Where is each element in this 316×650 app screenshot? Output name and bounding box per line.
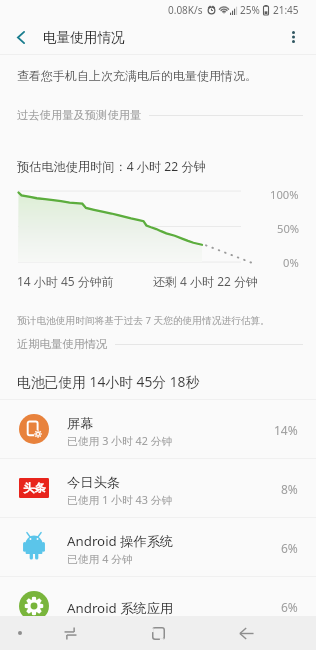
staticText: 6% bbox=[281, 599, 298, 615]
staticText: 0.08K/s bbox=[168, 3, 203, 17]
staticText: 已使用 3 小时 42 分钟 bbox=[67, 433, 173, 448]
staticText: 0% bbox=[283, 255, 299, 270]
staticText: 14% bbox=[274, 422, 298, 438]
staticText: 50% bbox=[277, 221, 300, 236]
button[interactable]: Assistant bbox=[4, 621, 36, 645]
button[interactable]: Android 操作系统 bbox=[0, 518, 316, 576]
staticText: 预估电池使用时间：4 小时 22 分钟 bbox=[17, 158, 206, 175]
staticText: 电量使用情况 bbox=[43, 29, 125, 46]
staticText: 25% bbox=[240, 3, 260, 17]
button[interactable]: Back bbox=[224, 619, 268, 647]
button[interactable]: 头条 bbox=[0, 459, 316, 517]
button[interactable]: Recent apps bbox=[136, 619, 180, 647]
button[interactable]: Back bbox=[5, 21, 37, 53]
button[interactable]: 屏幕 bbox=[0, 400, 316, 458]
staticText: Android 系统应用 bbox=[67, 599, 174, 617]
staticText: 过去使用量及预测使用量 bbox=[17, 108, 142, 122]
staticText: 21:45 bbox=[273, 3, 299, 17]
staticText: Android 操作系统 bbox=[67, 532, 174, 550]
staticText: 预计电池使用时间将基于过去 7 天您的使用情况进行估算。 bbox=[17, 314, 270, 327]
staticText: 还剩 4 小时 22 分钟 bbox=[153, 273, 259, 289]
staticText: 8% bbox=[281, 481, 298, 497]
staticText: 14 小时 45 分钟前 bbox=[17, 273, 114, 289]
staticText: 今日头条 bbox=[67, 474, 121, 491]
button[interactable]: Android 系统应用 bbox=[0, 577, 316, 635]
staticText: 电池已使用 14小时 45分 18秒 bbox=[17, 372, 200, 391]
staticText: 查看您手机自上次充满电后的电量使用情况。 bbox=[17, 68, 257, 83]
staticText: 6% bbox=[281, 540, 298, 556]
staticText: 头条 bbox=[23, 481, 46, 495]
button[interactable]: More options bbox=[277, 21, 309, 53]
staticText: 100% bbox=[270, 187, 299, 202]
staticText: 已使用 4 分钟 bbox=[67, 551, 133, 566]
staticText: 近期电量使用情况 bbox=[17, 337, 108, 351]
staticText: 屏幕 bbox=[67, 415, 94, 432]
staticText: 已使用 1 小时 43 分钟 bbox=[67, 492, 173, 507]
button[interactable]: Switch keyboard bbox=[48, 619, 92, 647]
